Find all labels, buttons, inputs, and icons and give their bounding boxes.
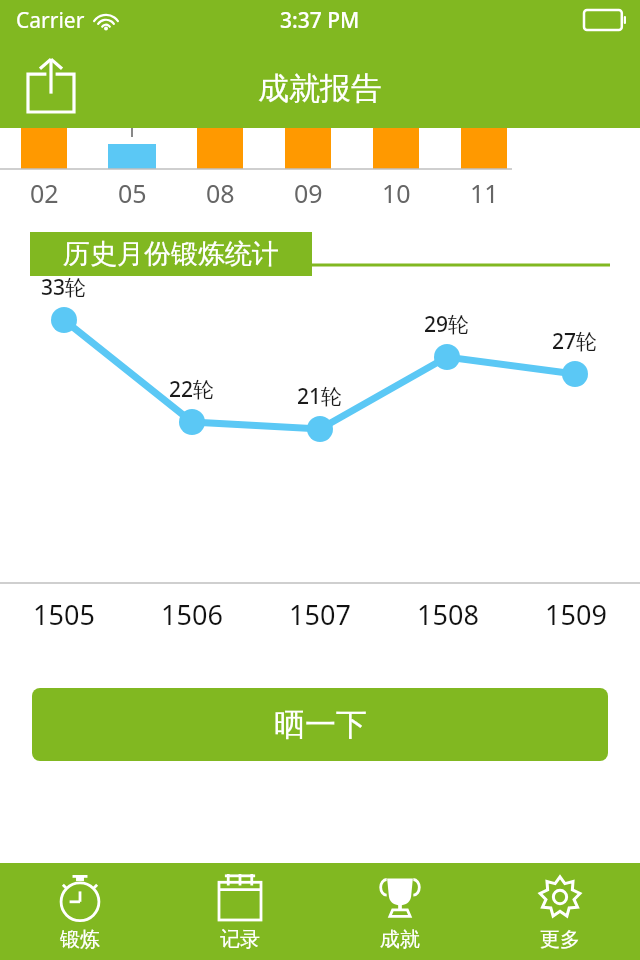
staticText: 成就 [380, 927, 420, 952]
staticText: 1507 [256, 596, 384, 633]
staticText: 21轮 [297, 382, 343, 411]
staticText: 05 [118, 176, 147, 210]
staticText: 02 [30, 176, 59, 210]
button[interactable]: 记录 [160, 863, 320, 960]
button[interactable]: Share [18, 52, 84, 118]
staticText: 10 [382, 176, 411, 210]
staticText: 1506 [128, 596, 256, 633]
staticText: 22轮 [169, 375, 215, 404]
staticText: 27轮 [552, 327, 598, 356]
button[interactable]: 锻炼 [0, 863, 160, 960]
button[interactable]: 成就 [320, 863, 480, 960]
staticText: 08 [206, 176, 235, 210]
staticText: 09 [294, 176, 323, 210]
button[interactable]: 晒一下 [32, 688, 608, 761]
staticText: 更多 [540, 927, 580, 952]
staticText: 1508 [384, 596, 512, 633]
staticText: 晒一下 [274, 705, 367, 744]
staticText: 1505 [0, 596, 128, 633]
button[interactable]: 更多 [480, 863, 640, 960]
staticText: 历史月份锻炼统计 [63, 237, 279, 271]
staticText: 成就报告 [258, 69, 382, 108]
staticText: 3:37 PM [280, 6, 360, 35]
staticText: 11 [470, 176, 499, 210]
staticText: 锻炼 [60, 927, 100, 952]
staticText: Carrier [16, 6, 85, 35]
staticText: 记录 [220, 927, 260, 952]
staticText: 33轮 [41, 273, 87, 302]
staticText: 29轮 [424, 310, 470, 339]
staticText: 1509 [512, 596, 640, 633]
